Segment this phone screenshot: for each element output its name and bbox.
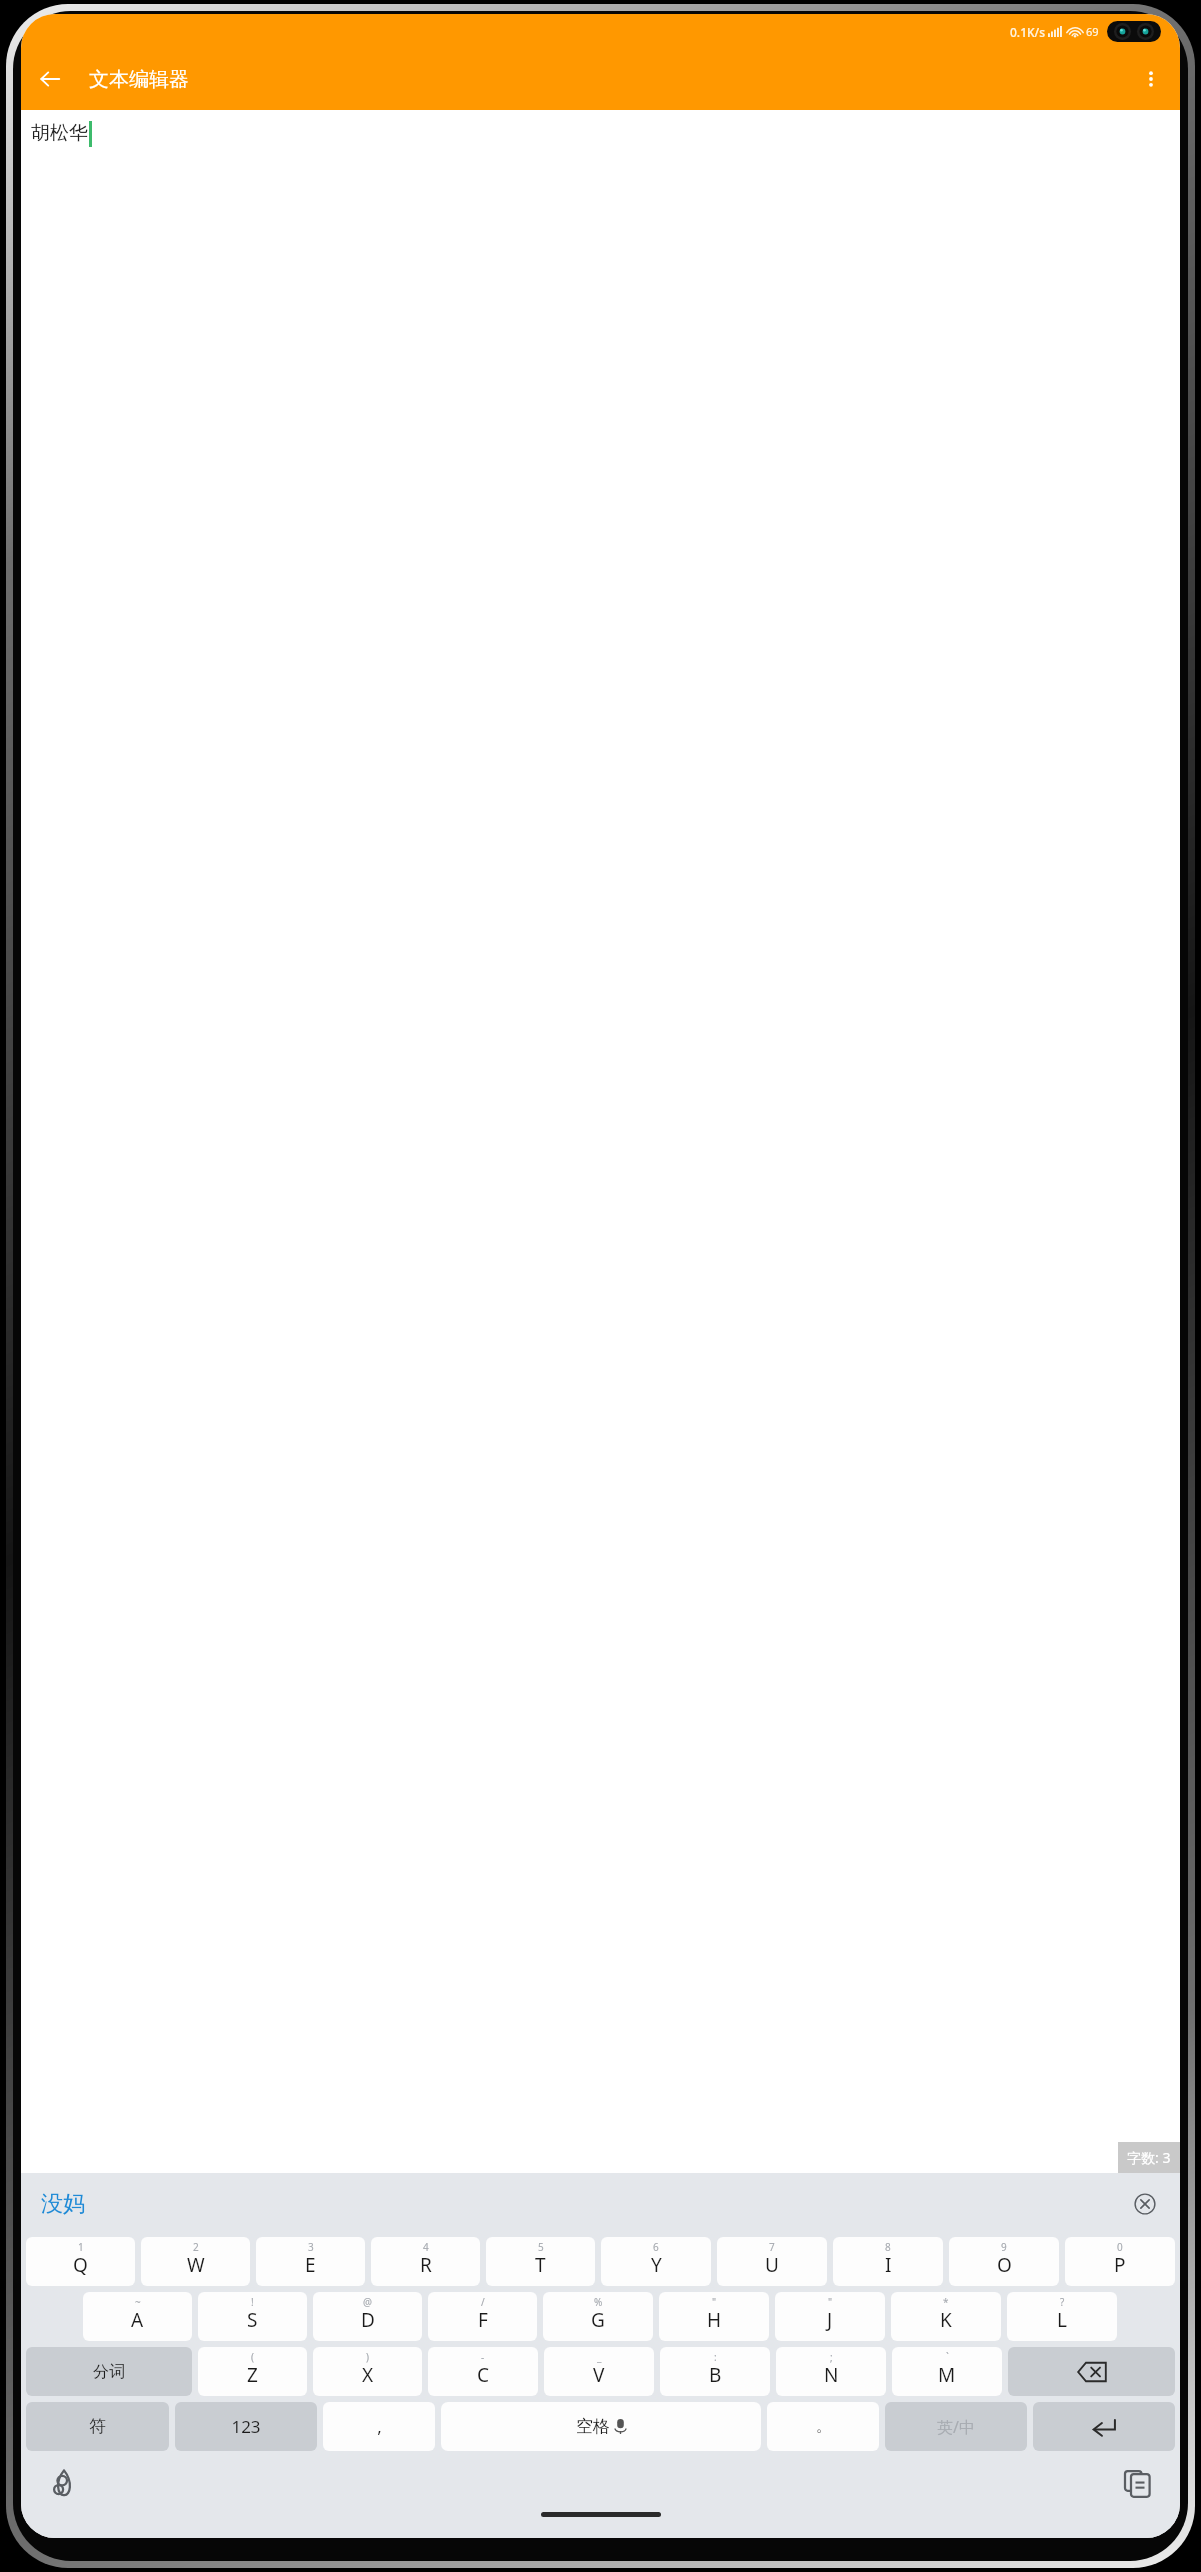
staticText: / xyxy=(481,2295,485,2309)
staticText: F xyxy=(478,2307,488,2333)
staticText: J xyxy=(827,2307,833,2333)
staticText: A xyxy=(131,2307,144,2333)
button[interactable]: Enter xyxy=(1033,2402,1175,2451)
staticText: R xyxy=(420,2252,432,2278)
button[interactable]: @ xyxy=(313,2292,422,2341)
button[interactable]: ? xyxy=(1007,2292,1117,2341)
button[interactable]: ; xyxy=(776,2347,886,2396)
staticText: 5 xyxy=(538,2240,544,2254)
staticText: V xyxy=(593,2362,605,2388)
button[interactable]: 1 xyxy=(26,2237,135,2286)
staticText: " xyxy=(828,2295,833,2309)
staticText: H xyxy=(707,2307,722,2333)
staticText: Y xyxy=(651,2252,662,2278)
staticText: 没妈 xyxy=(41,2190,85,2218)
staticText: : xyxy=(714,2350,717,2364)
button[interactable]: More options xyxy=(1128,56,1174,102)
button[interactable]: - xyxy=(428,2347,538,2396)
staticText: 6 xyxy=(653,2240,659,2254)
staticText: Z xyxy=(247,2362,258,2388)
button[interactable]: / xyxy=(428,2292,537,2341)
staticText: " xyxy=(712,2295,717,2309)
button[interactable]: ! xyxy=(198,2292,307,2341)
staticText: I xyxy=(885,2252,892,2278)
staticText: , xyxy=(377,2415,382,2438)
button[interactable]: 。 xyxy=(767,2402,879,2451)
staticText: W xyxy=(187,2252,205,2278)
staticText: ( xyxy=(251,2350,254,2364)
button[interactable]: 4 xyxy=(371,2237,480,2286)
staticText: C xyxy=(477,2362,490,2388)
button[interactable]: Clipboard xyxy=(1116,2462,1158,2504)
staticText: K xyxy=(940,2307,952,2333)
button[interactable]: , xyxy=(323,2402,435,2451)
staticText: @ xyxy=(363,2295,372,2309)
button[interactable]: 2 xyxy=(141,2237,250,2286)
button[interactable]: 8 xyxy=(833,2237,943,2286)
button[interactable]: 9 xyxy=(949,2237,1059,2286)
button[interactable]: 符 xyxy=(26,2402,169,2451)
button[interactable]: Close candidates xyxy=(1126,2185,1164,2223)
button[interactable]: 3 xyxy=(256,2237,365,2286)
button[interactable]: " xyxy=(775,2292,885,2341)
staticText: U xyxy=(765,2252,779,2278)
staticText: 1 xyxy=(78,2240,84,2254)
button[interactable]: 7 xyxy=(717,2237,827,2286)
staticText: 123 xyxy=(231,2415,261,2438)
button[interactable]: Input method logo xyxy=(43,2462,85,2504)
button[interactable]: ` xyxy=(892,2347,1002,2396)
staticText: 文本编辑器 xyxy=(89,67,189,92)
button[interactable]: ~ xyxy=(83,2292,192,2341)
staticText: S xyxy=(247,2307,258,2333)
staticText: ! xyxy=(251,2295,254,2309)
button[interactable]: : xyxy=(660,2347,770,2396)
staticText: 。 xyxy=(816,2417,831,2436)
button[interactable]: 分词 xyxy=(26,2347,192,2396)
button[interactable]: % xyxy=(543,2292,653,2341)
button[interactable]: _ xyxy=(544,2347,654,2396)
button[interactable]: ( xyxy=(198,2347,307,2396)
staticText: 3 xyxy=(308,2240,314,2254)
button[interactable]: 空格 xyxy=(441,2402,761,2451)
staticText: 7 xyxy=(769,2240,775,2254)
button[interactable]: 123 xyxy=(175,2402,317,2451)
button[interactable]: * xyxy=(891,2292,1001,2341)
staticText: X xyxy=(362,2362,374,2388)
staticText: ` xyxy=(946,2350,949,2364)
staticText: 0 xyxy=(1117,2240,1123,2254)
staticText: Q xyxy=(73,2252,88,2278)
button[interactable]: 0 xyxy=(1065,2237,1175,2286)
staticText: 8 xyxy=(885,2240,891,2254)
button[interactable]: ) xyxy=(313,2347,422,2396)
staticText: ? xyxy=(1060,2295,1065,2309)
staticText: M xyxy=(938,2362,956,2388)
staticText: T xyxy=(535,2252,546,2278)
staticText: 胡松华 xyxy=(31,121,88,145)
staticText: _ xyxy=(597,2350,602,2364)
staticText: L xyxy=(1057,2307,1067,2333)
staticText: D xyxy=(361,2307,375,2333)
staticText: P xyxy=(1114,2252,1126,2278)
staticText: 2 xyxy=(193,2240,199,2254)
staticText: ; xyxy=(830,2350,833,2364)
button[interactable]: Back xyxy=(27,56,73,102)
staticText: - xyxy=(481,2350,485,2364)
staticText: G xyxy=(591,2307,605,2333)
staticText: 4 xyxy=(423,2240,429,2254)
button[interactable]: 6 xyxy=(601,2237,711,2286)
staticText: 9 xyxy=(1001,2240,1007,2254)
staticText: E xyxy=(305,2252,316,2278)
staticText: ) xyxy=(366,2350,369,2364)
staticText: * xyxy=(943,2295,949,2309)
staticText: B xyxy=(709,2362,722,2388)
button[interactable]: 5 xyxy=(486,2237,595,2286)
button[interactable]: " xyxy=(659,2292,769,2341)
staticText: N xyxy=(824,2362,839,2388)
staticText: 英/中 xyxy=(937,2416,975,2438)
staticText: ~ xyxy=(135,2295,141,2309)
button[interactable]: 没妈 xyxy=(35,2188,91,2220)
staticText: 69 xyxy=(1086,24,1099,39)
button[interactable]: Backspace xyxy=(1008,2347,1175,2396)
staticText: 符 xyxy=(89,2416,106,2437)
button[interactable]: 英/中 xyxy=(885,2402,1027,2451)
